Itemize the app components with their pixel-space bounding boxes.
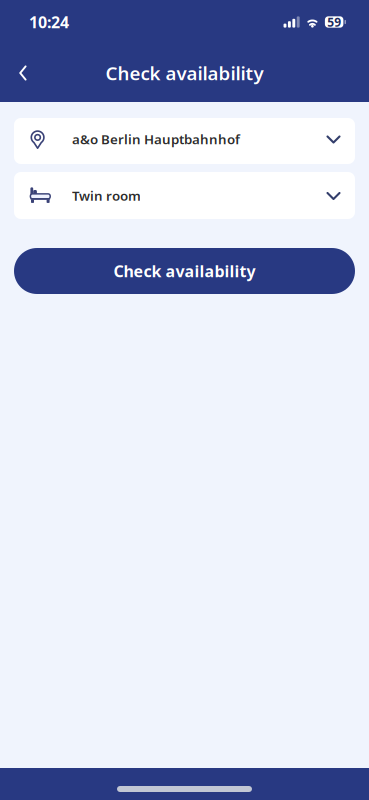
staticText: Twin room	[72, 187, 141, 204]
button[interactable]: Back	[0, 49, 46, 97]
staticText: 10:24	[29, 11, 69, 33]
staticText: 59	[327, 14, 341, 30]
button[interactable]: Select hostel	[14, 118, 355, 164]
button[interactable]: Select room type	[14, 172, 355, 219]
button[interactable]: Check availability	[14, 248, 355, 294]
staticText: Check availability	[113, 260, 255, 282]
staticText: a&o Berlin Hauptbahnhof	[72, 130, 240, 148]
staticText: Check availability	[105, 61, 263, 85]
